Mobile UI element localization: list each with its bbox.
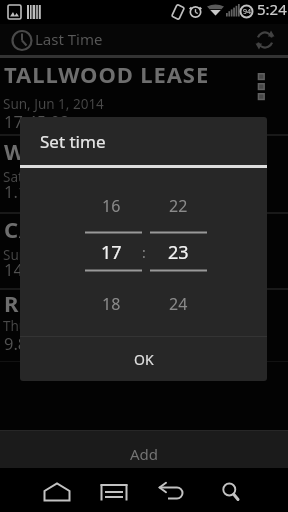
staticText: TALLWOOD LEASE xyxy=(4,59,210,89)
staticText: 5:24 xyxy=(257,0,287,19)
button[interactable] xyxy=(0,290,288,364)
button[interactable]: 17 xyxy=(83,240,139,264)
staticText: 18 xyxy=(102,293,121,315)
button[interactable]: 24 xyxy=(150,292,206,315)
button[interactable] xyxy=(153,472,189,508)
button[interactable] xyxy=(39,472,75,508)
staticText: 14 days ago xyxy=(4,258,97,280)
button[interactable]: 18 xyxy=(83,292,139,315)
staticText: 22 xyxy=(169,195,188,217)
staticText: 16 xyxy=(102,195,121,217)
staticText: 17:45:02 ago xyxy=(4,110,104,132)
staticText: OK xyxy=(134,350,154,369)
staticText: 24 xyxy=(169,293,188,315)
button[interactable] xyxy=(95,472,131,508)
button[interactable] xyxy=(211,472,247,508)
staticText: Thu, May 8, 2014 xyxy=(3,317,111,335)
staticText: Sun, May 18, 2014 xyxy=(3,246,118,264)
button[interactable]: Add xyxy=(0,430,288,468)
staticText: 23 xyxy=(168,240,189,264)
staticText: Add xyxy=(130,444,159,464)
staticText: Sun, Jun 1, 2014 xyxy=(3,95,104,113)
staticText: : xyxy=(142,243,146,262)
button[interactable] xyxy=(0,136,288,210)
button[interactable] xyxy=(248,62,276,106)
staticText: RENT PAYMENT xyxy=(4,288,182,318)
button[interactable]: Last Time xyxy=(0,24,288,55)
button[interactable] xyxy=(0,214,288,288)
button[interactable]: OK xyxy=(20,337,267,381)
staticText: CAR INSURANCE xyxy=(4,214,195,244)
staticText: 9.8 days ago xyxy=(4,332,101,354)
staticText: WATER PLANTS xyxy=(4,136,178,166)
button[interactable]: 23 xyxy=(150,240,206,264)
staticText: Sat, May 24, 2014 xyxy=(3,168,114,186)
staticText: Last Time xyxy=(35,29,103,49)
staticText: 94 xyxy=(243,7,252,17)
button[interactable]: 16 xyxy=(83,194,139,217)
button[interactable] xyxy=(0,58,288,132)
button[interactable]: 22 xyxy=(150,194,206,217)
staticText: 1.1 weeks ago xyxy=(4,180,114,202)
staticText: 17 xyxy=(101,240,122,264)
staticText: Set time xyxy=(40,130,106,153)
